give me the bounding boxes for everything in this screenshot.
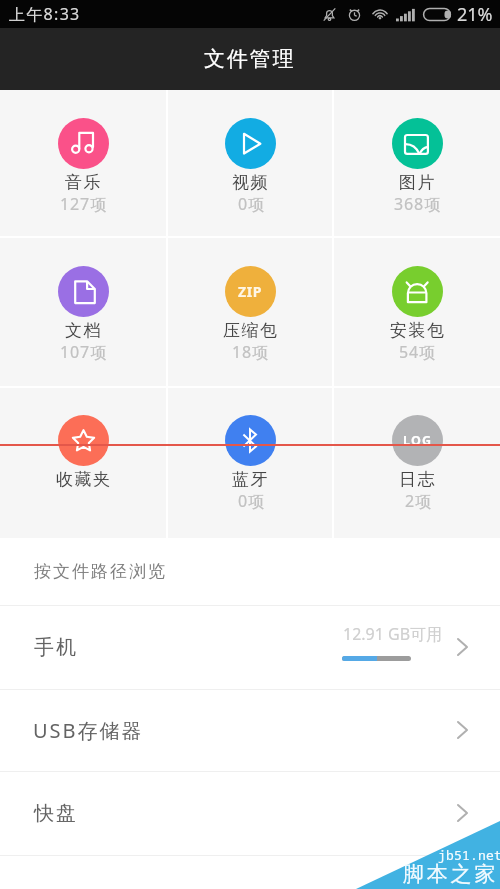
button[interactable]: 蓝牙 [167,415,333,515]
staticText: 按文件路径浏览 [33,561,166,582]
staticText: 手机 [33,635,77,660]
button[interactable]: 收藏夹 [0,415,166,515]
staticText: 0项 [238,490,265,512]
staticText: ZIP [238,282,263,301]
staticText: 图片 [399,172,437,193]
button[interactable]: 文档 [0,266,166,366]
button[interactable]: 手机 [0,606,500,689]
staticText: 安装包 [390,320,446,341]
button[interactable]: 音乐 [0,118,166,218]
staticText: 21% [457,2,493,27]
staticText: 蓝牙 [232,469,270,490]
button[interactable]: 图片 [334,118,500,218]
staticText: 127项 [60,193,108,215]
staticText: 收藏夹 [56,469,112,490]
staticText: jb51.net [438,846,500,864]
staticText: 音乐 [65,172,103,193]
staticText: 2项 [405,490,432,512]
staticText: USB存储器 [33,717,144,744]
staticText: 压缩包 [223,320,279,341]
button[interactable]: ZIP [167,266,333,366]
staticText: 日志 [399,469,437,490]
other: 打开 USB存储器 [457,721,467,739]
button[interactable]: LOG [334,415,500,515]
other: 打开 快盘 [457,804,467,822]
staticText: 368项 [394,193,442,215]
staticText: 18项 [232,341,270,363]
staticText: 视频 [232,172,270,193]
staticText: 文件管理 [204,46,296,72]
button[interactable]: 视频 [167,118,333,218]
staticText: 脚本之家 [403,861,499,887]
staticText: 快盘 [33,801,77,826]
staticText: 107项 [60,341,108,363]
other: 打开 手机 [457,638,467,656]
staticText: 12.91 GB可用 [343,623,443,645]
staticText: LOG [403,432,433,449]
button[interactable]: 快盘 [0,772,500,855]
staticText: 文档 [65,320,103,341]
button[interactable]: 安装包 [334,266,500,366]
staticText: 0项 [238,193,265,215]
button[interactable]: USB存储器 [0,690,500,771]
staticText: 上午8:33 [9,3,81,25]
staticText: 54项 [399,341,437,363]
